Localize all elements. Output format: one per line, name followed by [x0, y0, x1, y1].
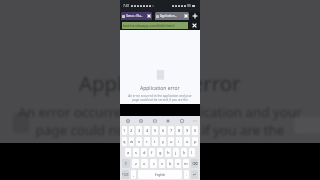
button[interactable]: s — [133, 148, 139, 157]
staticText: v — [161, 161, 164, 166]
staticText: 1 — [123, 128, 126, 133]
button[interactable]: i — [176, 137, 182, 146]
button[interactable]: 4 — [144, 126, 150, 135]
button[interactable]: b — [167, 159, 173, 168]
button[interactable]: ⇧ — [122, 159, 130, 168]
button[interactable]: x — [141, 159, 148, 168]
button[interactable]: t — [152, 137, 158, 146]
button[interactable]: 0 — [192, 126, 198, 135]
button[interactable]: Keyboard tool — [178, 117, 185, 124]
staticText: , — [133, 172, 135, 177]
button[interactable]: a — [125, 148, 131, 157]
staticText: 7 — [170, 128, 173, 133]
button[interactable]: 8 — [176, 126, 182, 135]
button[interactable]: Keyboard tool — [151, 117, 158, 124]
button[interactable]: 9 — [184, 126, 190, 135]
button[interactable]: l — [189, 148, 195, 157]
button[interactable]: j — [173, 148, 179, 157]
button[interactable]: Keyboard tool — [191, 117, 198, 124]
staticText: t — [154, 139, 156, 144]
staticText: 5 — [154, 128, 157, 133]
button[interactable]: New tab — [189, 12, 200, 20]
button[interactable]: Genus : Nu... — [121, 12, 152, 20]
staticText: ?123 — [122, 173, 129, 177]
staticText: test.herokuapp.com/blah.html — [123, 23, 175, 28]
staticText: p — [194, 139, 197, 144]
staticText: 3 — [138, 128, 141, 133]
staticText: s — [135, 150, 137, 155]
staticText: x — [143, 161, 146, 166]
button[interactable]: ?123 — [122, 170, 129, 179]
staticText: f — [151, 150, 153, 155]
staticText: m — [184, 161, 188, 166]
staticText: g — [159, 150, 162, 155]
button[interactable]: c — [150, 159, 157, 168]
staticText: 8 — [178, 128, 181, 133]
button[interactable]: Keyboard tool — [137, 117, 144, 124]
staticText: 7:41 — [123, 4, 130, 8]
button[interactable]: Application... — [155, 12, 189, 20]
button[interactable]: English — [138, 170, 182, 179]
staticText: Application error — [79, 69, 241, 97]
button[interactable]: q — [122, 137, 127, 146]
button[interactable]: f — [149, 148, 155, 157]
staticText: 6 — [162, 128, 165, 133]
button[interactable]: r — [144, 137, 150, 146]
button[interactable]: v — [159, 159, 165, 168]
button[interactable]: d — [141, 148, 147, 157]
button[interactable]: u — [168, 137, 174, 146]
staticText: j — [175, 150, 177, 155]
staticText: n — [177, 161, 180, 166]
button[interactable]: ⌫ — [191, 159, 198, 168]
staticText: k — [183, 150, 186, 155]
button[interactable]: p — [192, 137, 198, 146]
button[interactable]: Keyboard tool — [164, 117, 171, 124]
staticText: i — [178, 139, 180, 144]
staticText: c — [153, 161, 155, 166]
button[interactable]: 6 — [160, 126, 166, 135]
button[interactable]: 7 — [168, 126, 174, 135]
button[interactable]: o — [184, 137, 190, 146]
button[interactable]: w — [129, 137, 134, 146]
staticText: b — [169, 161, 172, 166]
staticText: An error occurred in the application and… — [18, 103, 302, 139]
button[interactable]: 3 — [136, 126, 142, 135]
staticText: Genus : Nu... — [126, 14, 143, 18]
staticText: u — [170, 139, 173, 144]
button[interactable]: Close — [188, 20, 200, 30]
button[interactable]: k — [181, 148, 187, 157]
staticText: 2 — [130, 128, 133, 133]
button[interactable]: . — [184, 170, 189, 179]
button[interactable]: h — [165, 148, 171, 157]
button[interactable]: 5 — [152, 126, 158, 135]
staticText: w — [130, 139, 134, 144]
staticText: ⌫ — [192, 161, 198, 166]
staticText: 4 — [146, 128, 149, 133]
button[interactable]: e — [136, 137, 142, 146]
button[interactable]: , — [131, 170, 136, 179]
staticText: 0 — [194, 128, 197, 133]
staticText: h — [167, 150, 170, 155]
staticText: o — [186, 139, 189, 144]
staticText: r — [146, 139, 148, 144]
button[interactable]: m — [183, 159, 189, 168]
button[interactable]: n — [175, 159, 181, 168]
staticText: ⇧ — [124, 161, 128, 166]
button[interactable]: 2 — [129, 126, 134, 135]
staticText: q — [123, 139, 126, 144]
staticText: 90 — [187, 4, 191, 8]
staticText: d — [143, 150, 146, 155]
button[interactable]: 1 — [122, 126, 127, 135]
staticText: . — [186, 172, 188, 177]
button[interactable]: y — [160, 137, 166, 146]
button[interactable]: ↵ — [191, 170, 198, 179]
staticText: z — [135, 161, 137, 166]
button[interactable]: g — [157, 148, 163, 157]
staticText: Application error — [140, 85, 180, 92]
button[interactable]: Keyboard tool — [124, 117, 131, 124]
staticText: e — [138, 139, 141, 144]
staticText: English — [155, 173, 166, 177]
button[interactable]: z — [132, 159, 139, 168]
staticText: a — [127, 150, 130, 155]
staticText: y — [162, 139, 165, 144]
